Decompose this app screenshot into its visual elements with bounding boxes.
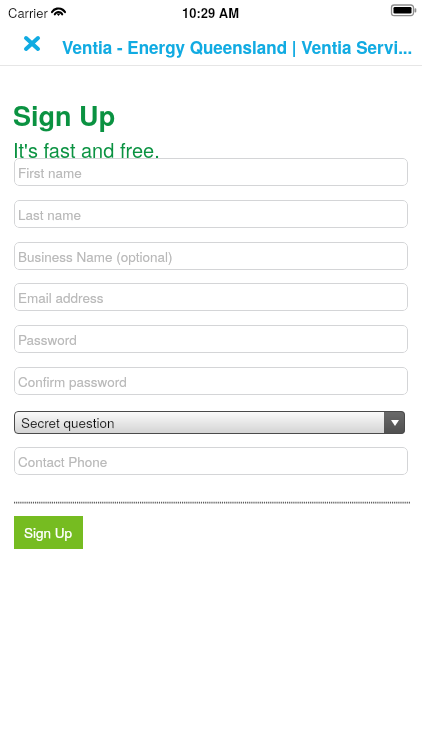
staticText: Last name bbox=[18, 205, 81, 224]
staticText: First name bbox=[18, 163, 82, 182]
button[interactable]: Sign Up bbox=[14, 516, 83, 549]
button[interactable]: Confirm password bbox=[14, 367, 408, 395]
button[interactable]: Business Name (optional) bbox=[14, 242, 408, 270]
staticText: Secret question bbox=[21, 413, 115, 432]
button[interactable]: First name bbox=[14, 158, 408, 186]
staticText: It's fast and free. bbox=[13, 135, 160, 164]
button[interactable]: Contact Phone bbox=[14, 447, 408, 475]
button[interactable]: Email address bbox=[14, 283, 408, 311]
button[interactable]: Close bbox=[10, 25, 53, 62]
button[interactable]: Last name bbox=[14, 200, 408, 228]
staticText: Ventia - Energy Queensland | Ventia Serv… bbox=[62, 35, 418, 59]
staticText: Sign Up bbox=[13, 96, 116, 135]
button[interactable]: Secret question bbox=[14, 411, 405, 434]
button[interactable]: Password bbox=[14, 325, 408, 353]
staticText: 10:29 AM bbox=[182, 3, 240, 22]
staticText: Confirm password bbox=[18, 372, 127, 391]
staticText: Email address bbox=[18, 288, 104, 307]
staticText: Carrier bbox=[8, 3, 48, 22]
staticText: Business Name (optional) bbox=[18, 247, 173, 266]
staticText: Sign Up bbox=[24, 523, 73, 542]
staticText: Password bbox=[18, 330, 77, 349]
staticText: Contact Phone bbox=[18, 452, 108, 471]
